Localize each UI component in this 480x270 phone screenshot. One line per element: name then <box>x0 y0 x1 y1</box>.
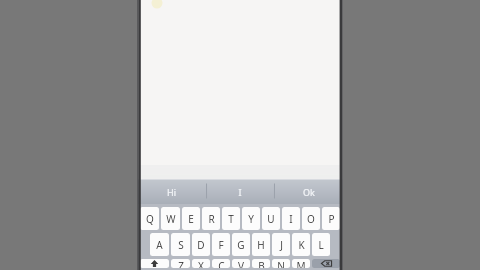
button[interactable]: S <box>171 233 190 256</box>
button[interactable]: Ok <box>274 179 343 204</box>
staticText: P <box>328 212 335 226</box>
staticText: L <box>318 238 324 252</box>
staticText: Y <box>248 212 254 226</box>
staticText: Q <box>146 212 154 226</box>
button[interactable]: V <box>232 259 250 268</box>
staticText: V <box>238 259 244 268</box>
staticText: H <box>257 238 265 252</box>
staticText: W <box>166 212 176 226</box>
button[interactable]: Q <box>140 207 159 230</box>
staticText: J <box>280 238 283 252</box>
button[interactable]: L <box>312 233 330 256</box>
staticText: B <box>258 259 265 268</box>
button[interactable]: Backspace <box>312 259 340 268</box>
button[interactable]: Shift <box>140 259 169 268</box>
button[interactable]: B <box>252 259 270 268</box>
staticText: G <box>237 238 245 252</box>
staticText: A <box>156 238 163 252</box>
button[interactable]: Y <box>242 207 260 230</box>
staticText: I <box>238 186 242 198</box>
button[interactable]: I <box>282 207 300 230</box>
button[interactable]: G <box>232 233 250 256</box>
button[interactable]: R <box>202 207 220 230</box>
staticText: M <box>296 259 306 268</box>
staticText: U <box>267 212 275 226</box>
button[interactable]: M <box>292 259 310 268</box>
staticText: N <box>277 259 285 268</box>
button[interactable]: Hi <box>137 179 206 204</box>
staticText: O <box>307 212 315 226</box>
button[interactable]: O <box>302 207 320 230</box>
button[interactable]: X <box>192 259 210 268</box>
button[interactable]: D <box>192 233 210 256</box>
staticText: D <box>197 238 205 252</box>
button[interactable]: U <box>262 207 280 230</box>
staticText: C <box>218 259 225 268</box>
staticText: I <box>289 212 293 226</box>
button[interactable]: W <box>161 207 180 230</box>
button[interactable]: J <box>272 233 290 256</box>
button[interactable]: I <box>206 179 274 204</box>
button[interactable]: C <box>212 259 230 268</box>
staticText: F <box>218 238 224 252</box>
button[interactable]: A <box>150 233 169 256</box>
staticText: R <box>208 212 215 226</box>
button[interactable]: H <box>252 233 270 256</box>
button[interactable]: T <box>222 207 240 230</box>
staticText: X <box>198 259 204 268</box>
staticText: K <box>298 238 305 252</box>
button[interactable]: N <box>272 259 290 268</box>
button[interactable]: F <box>212 233 230 256</box>
button[interactable]: E <box>182 207 200 230</box>
staticText: T <box>228 212 234 226</box>
button[interactable]: P <box>322 207 340 230</box>
button[interactable]: Z <box>171 259 190 268</box>
staticText: Ok <box>303 186 315 198</box>
staticText: Hi <box>167 186 176 198</box>
staticText: E <box>188 212 194 226</box>
staticText: S <box>178 238 184 252</box>
button[interactable]: K <box>292 233 310 256</box>
staticText: Z <box>178 259 184 268</box>
